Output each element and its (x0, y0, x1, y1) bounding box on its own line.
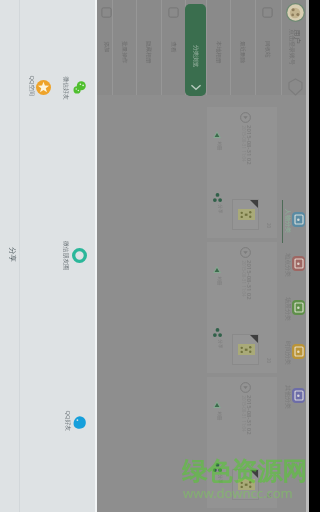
staticText: 分享 (216, 204, 222, 213)
staticText: 分享 (216, 474, 222, 483)
button[interactable]: QQ空间 (28, 72, 58, 102)
button[interactable]: 时间分类 (282, 338, 308, 366)
staticText: 场景分类 (284, 297, 292, 321)
staticText: 点击登录账号 (288, 29, 296, 65)
staticText: 分享 (8, 247, 17, 262)
staticText: 时间分类 (284, 341, 292, 365)
staticText: 地点分类 (284, 253, 292, 277)
button[interactable]: 2015-08-31 02 (207, 242, 277, 373)
staticText: www.downcc.com (183, 484, 293, 502)
button[interactable]: 2015-08-31 02 (207, 377, 277, 508)
staticText: 添加 (102, 41, 109, 53)
button[interactable]: 账号 (282, 0, 308, 95)
button[interactable]: 隐藏相册 (136, 0, 160, 95)
staticText: 绿色资源网 (182, 456, 307, 487)
button[interactable]: 本地相册 (206, 0, 230, 95)
button[interactable]: 人物分类 (282, 206, 308, 234)
staticText: 分享 (216, 339, 222, 348)
staticText: 人物分类 (284, 209, 292, 233)
button[interactable]: 微信好友 (64, 72, 94, 102)
staticText: 2015-08-31 02 (245, 395, 253, 435)
staticText: 相册 (215, 141, 221, 150)
staticText: 隐藏相册 (145, 41, 152, 64)
staticText: 回收站 (264, 41, 271, 58)
button[interactable]: 地点分类 (282, 250, 308, 278)
button[interactable]: 其他分类 (282, 382, 308, 410)
staticText: 2015-08-31 02 (245, 260, 253, 300)
staticText: 分类浏览 (192, 45, 199, 68)
button[interactable]: QQ好友 (64, 407, 94, 437)
button[interactable]: 场景分类 (282, 294, 308, 322)
button[interactable]: 最近删除 (230, 0, 254, 95)
button[interactable]: 查看 (161, 0, 185, 95)
staticText: 本地相册 (215, 41, 222, 64)
staticText: QQ好友 (63, 410, 71, 431)
staticText: QQ空间 (27, 75, 35, 96)
staticText: 最近删除 (239, 41, 246, 64)
staticText: 用户 (292, 29, 301, 43)
staticText: 微信朋友圈 (63, 241, 70, 270)
button[interactable]: 微信朋友圈 (64, 240, 94, 270)
button[interactable]: 分类浏览 (185, 4, 206, 96)
staticText: 20 (266, 223, 272, 229)
button[interactable]: 批量操作 (112, 0, 136, 95)
staticText: 相册 (215, 276, 221, 285)
button[interactable]: 2015-08-31 02 (207, 107, 277, 238)
button[interactable]: 回收站 (255, 0, 279, 95)
staticText: 20 (266, 493, 272, 499)
staticText: 20 (266, 358, 272, 364)
staticText: 微信好友 (62, 76, 69, 100)
staticText: 2015-08-31 02 (245, 125, 253, 165)
staticText: 批量操作 (121, 41, 128, 64)
staticText: 查看 (169, 41, 176, 53)
staticText: 相册 (215, 411, 221, 420)
staticText: 其他分类 (284, 385, 292, 409)
button[interactable]: 添加 (94, 0, 118, 95)
